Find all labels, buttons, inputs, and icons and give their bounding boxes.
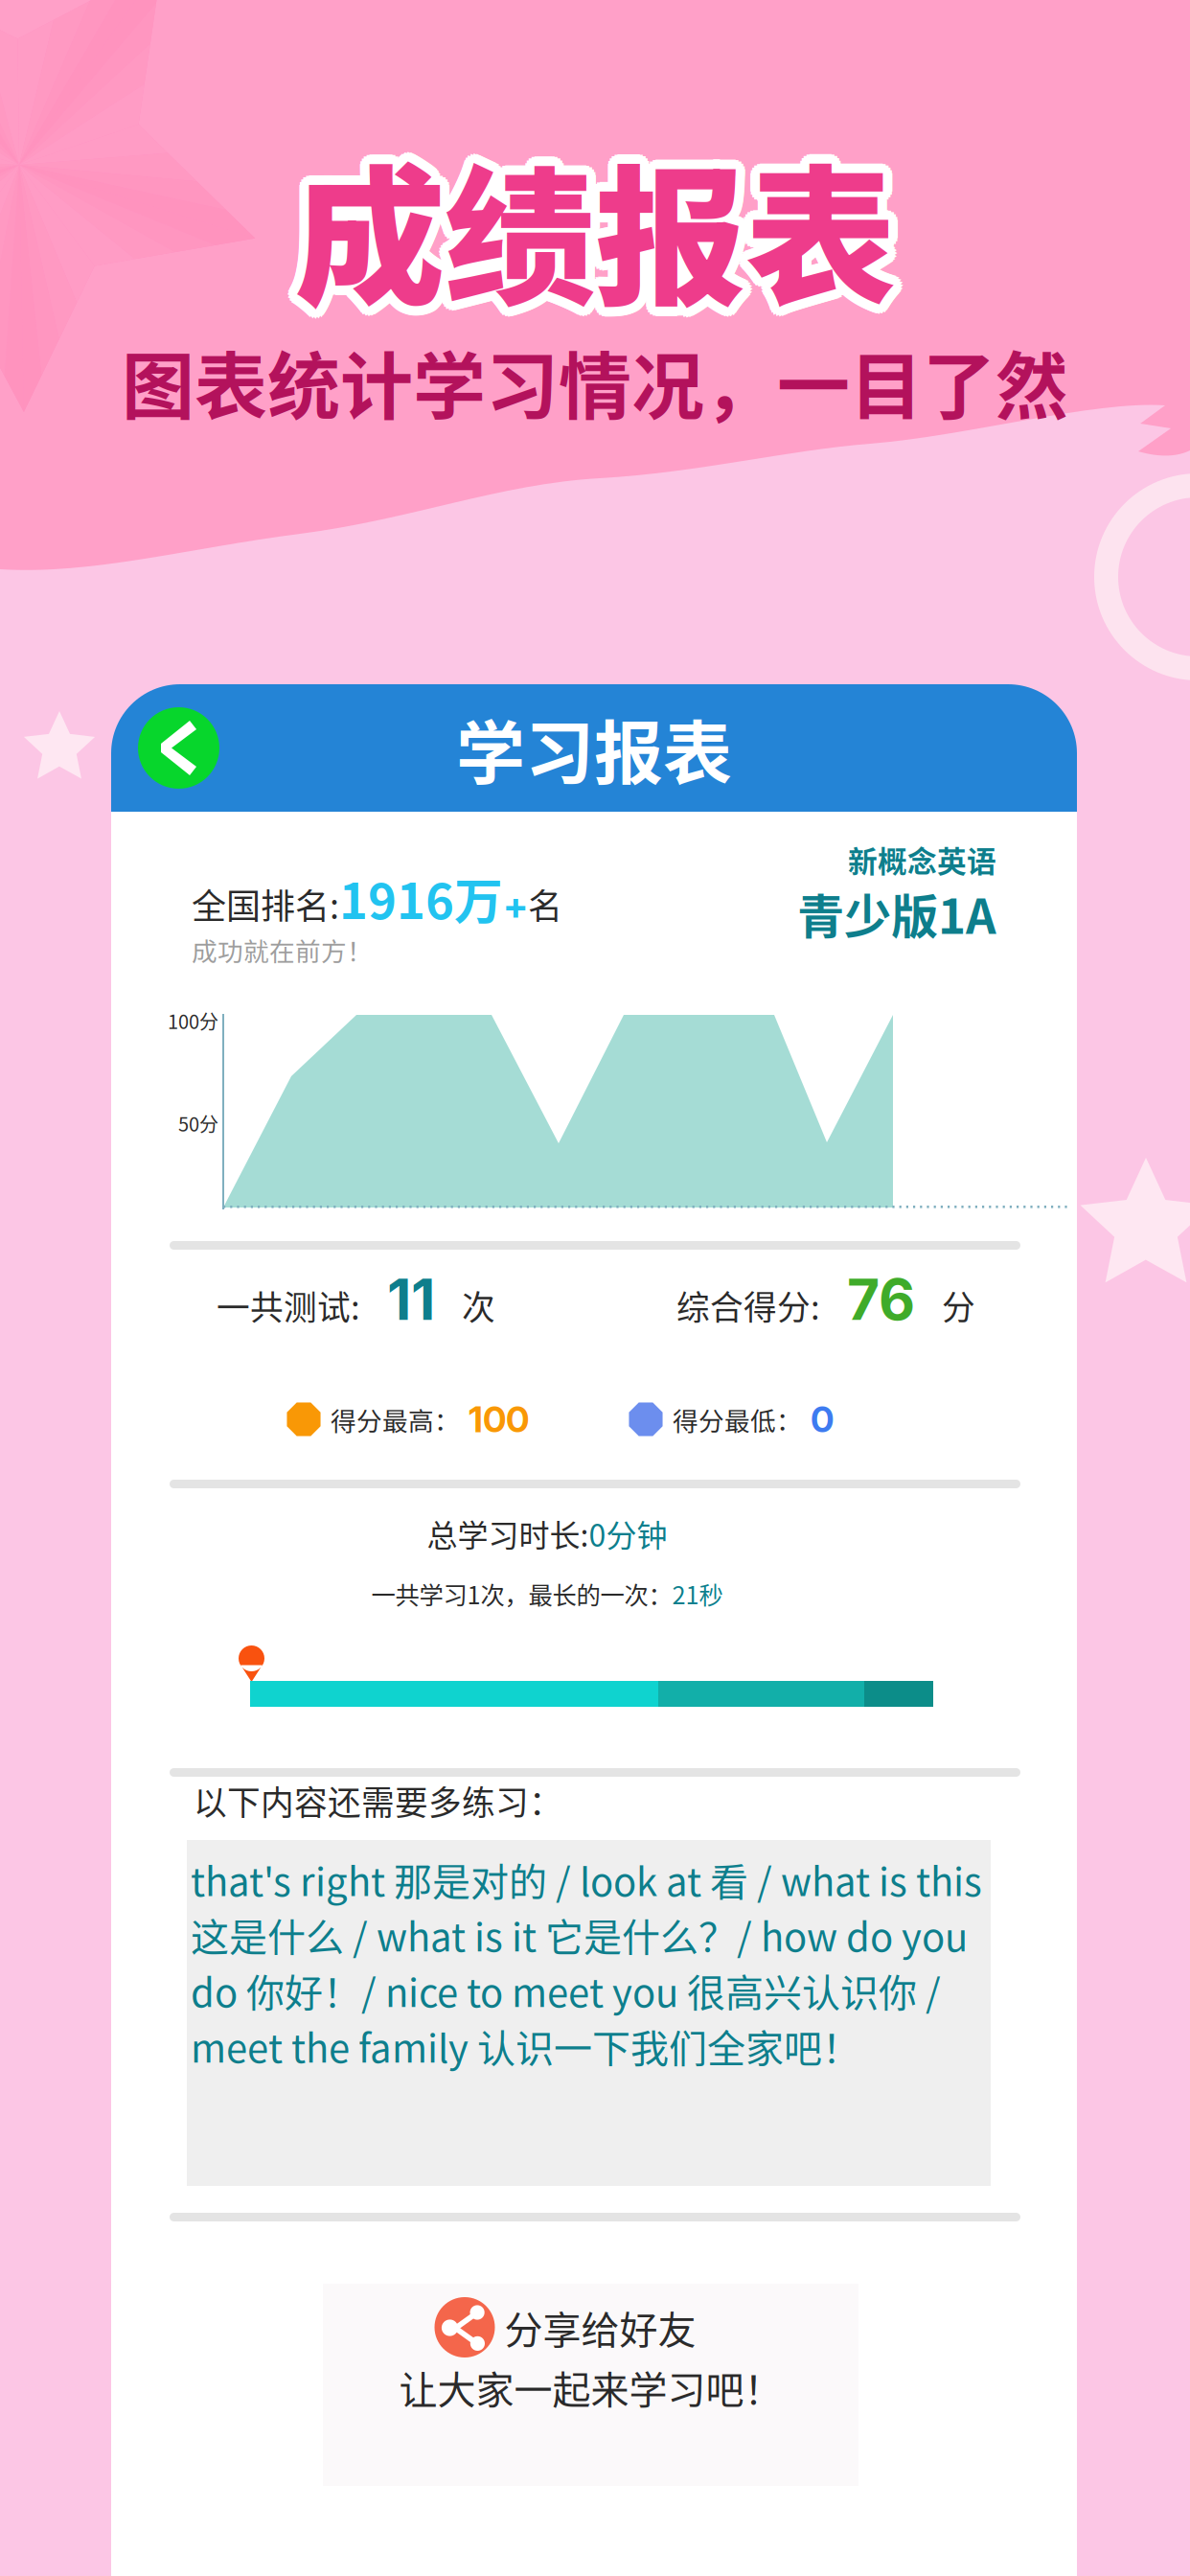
staticText: 分: [942, 1281, 975, 1329]
staticText: 50分: [178, 1109, 218, 1137]
staticText: 100分: [168, 1007, 218, 1035]
staticText: 0: [811, 1398, 834, 1441]
staticText: 成绩报表: [288, 126, 890, 344]
staticText: 次: [462, 1281, 495, 1329]
button[interactable]: 分享给好友: [323, 2284, 858, 2486]
staticText: 成绩报表: [297, 127, 899, 345]
staticText: 成绩报表: [285, 121, 887, 339]
staticText: 成绩报表: [297, 109, 899, 327]
staticText: 成绩报表: [285, 115, 887, 333]
staticText: 成绩报表: [302, 112, 904, 331]
staticText: 一共测试:: [217, 1281, 360, 1329]
staticText: 成绩报表: [300, 110, 902, 329]
staticText: 成绩报表: [303, 121, 905, 339]
staticText: 成绩报表: [294, 108, 896, 327]
staticText: 得分最高：: [331, 1401, 460, 1438]
staticText: 综合得分:: [676, 1281, 820, 1329]
staticText: 成绩报表: [286, 124, 888, 342]
button[interactable]: Back: [138, 707, 219, 789]
staticText: 总学习时长:: [427, 1511, 589, 1555]
staticText: 成绩报表: [294, 128, 896, 346]
staticText: 成绩报表: [294, 118, 896, 336]
staticText: 成绩报表: [285, 118, 886, 336]
staticText: 以下内容还需要多练习：: [194, 1777, 562, 1825]
staticText: 21秒: [672, 1576, 723, 1611]
staticText: 得分最低：: [673, 1401, 802, 1438]
staticText: 成绩报表: [303, 115, 905, 333]
staticText: 学习报表: [456, 698, 732, 798]
staticText: 图表统计学习情况，一目了然: [122, 329, 1068, 434]
staticText: 成绩报表: [302, 124, 904, 342]
staticText: 一共学习1次，最长的一次：: [371, 1576, 672, 1611]
staticText: 成绩报表: [291, 127, 893, 345]
staticText: 成绩报表: [291, 109, 893, 327]
staticText: 新概念英语: [848, 838, 996, 881]
staticText: 让大家一起来学习吧！: [399, 2359, 782, 2415]
staticText: 分享给好友: [504, 2300, 696, 2355]
staticText: 11: [360, 1265, 462, 1334]
staticText: 成绩报表: [286, 112, 888, 331]
staticText: 青少版1A: [797, 879, 996, 948]
staticText: 成绩报表: [304, 118, 905, 336]
staticText: 全国排名:: [192, 879, 339, 929]
staticText: 0分钟: [589, 1511, 667, 1555]
staticText: 1916万: [339, 863, 503, 933]
staticText: 名: [528, 879, 562, 929]
staticText: 成绩报表: [288, 110, 890, 329]
staticText: that's right 那是对的 / look at 看 / what is …: [191, 1851, 982, 2074]
staticText: 76: [820, 1265, 942, 1334]
staticText: +: [503, 882, 528, 928]
staticText: 100: [469, 1398, 529, 1441]
staticText: 成绩报表: [300, 126, 902, 344]
staticText: 成功就在前方！: [192, 931, 373, 968]
